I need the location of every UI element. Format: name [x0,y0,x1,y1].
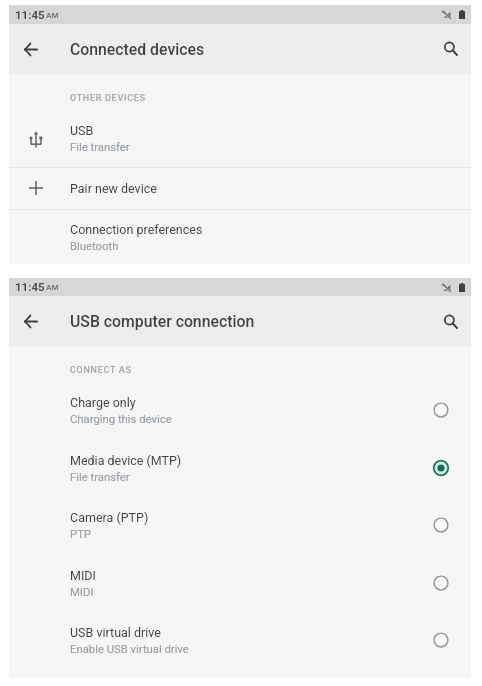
staticText: Enable USB virtual drive [70,643,189,656]
staticText: USB virtual drive [70,625,161,640]
staticText: PTP [70,528,91,541]
staticText: USB [70,123,94,138]
button[interactable]: USB [9,111,471,167]
staticText: OTHER DEVICES [70,93,146,104]
button[interactable]: Back [11,24,51,74]
staticText: AM [46,283,59,292]
staticText: Charging this device [70,413,172,426]
button[interactable]: Media device (MTP) [9,439,471,497]
staticText: Camera (PTP) [70,510,149,525]
button[interactable]: Pair new device [9,167,471,209]
staticText: AM [46,11,59,20]
staticText: MIDI [70,568,96,583]
staticText: 11:45 [15,280,45,293]
staticText: 11:45 [15,8,45,21]
button[interactable]: MIDI [9,554,471,612]
button[interactable]: Back [11,296,51,347]
staticText: Connection preferences [70,222,203,237]
staticText: USB computer connection [70,312,255,331]
staticText: File transfer [70,471,130,484]
staticText: MIDI [70,586,94,599]
staticText: Connected devices [70,40,205,59]
staticText: Pair new device [70,181,157,196]
staticText: Media device (MTP) [70,453,182,468]
button[interactable]: Charge only [9,381,471,439]
staticText: Charge only [70,395,136,410]
button[interactable]: Search [431,24,471,74]
button[interactable]: Connection preferences [9,209,471,264]
button[interactable]: USB virtual drive [9,611,471,669]
button[interactable]: Search [431,296,471,347]
staticText: File transfer [70,141,130,154]
button[interactable]: Camera (PTP) [9,496,471,554]
staticText: Bluetooth [70,240,119,253]
staticText: CONNECT AS [70,365,132,376]
